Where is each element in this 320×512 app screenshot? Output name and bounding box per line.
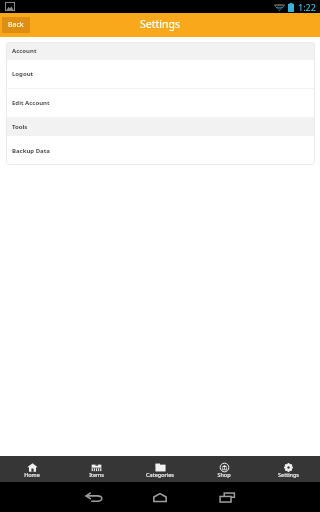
staticText: Items: [89, 471, 104, 478]
button[interactable]: Home: [0, 456, 64, 482]
staticText: Tools: [12, 123, 28, 131]
button[interactable]: Recents: [193, 482, 259, 512]
button[interactable]: Shop: [192, 456, 256, 482]
staticText: Logout: [12, 70, 34, 78]
staticText: Account: [12, 47, 37, 55]
button[interactable]: Items: [64, 456, 128, 482]
staticText: Settings: [278, 471, 299, 478]
button[interactable]: Home: [127, 482, 193, 512]
button[interactable]: Logout: [6, 60, 315, 88]
staticText: Backup Data: [12, 147, 50, 155]
button[interactable]: Back: [2, 17, 30, 33]
staticText: Home: [24, 471, 40, 478]
button[interactable]: Categories: [128, 456, 192, 482]
button[interactable]: Settings: [256, 456, 320, 482]
staticText: Back: [8, 20, 24, 30]
staticText: Settings: [140, 17, 180, 31]
staticText: Categories: [146, 471, 174, 478]
button[interactable]: Backup Data: [6, 136, 315, 165]
staticText: Shop: [217, 471, 231, 478]
staticText: 1:22: [298, 1, 316, 13]
button[interactable]: Back: [61, 482, 127, 512]
staticText: Edit Account: [12, 99, 50, 107]
button[interactable]: Edit Account: [6, 89, 315, 117]
